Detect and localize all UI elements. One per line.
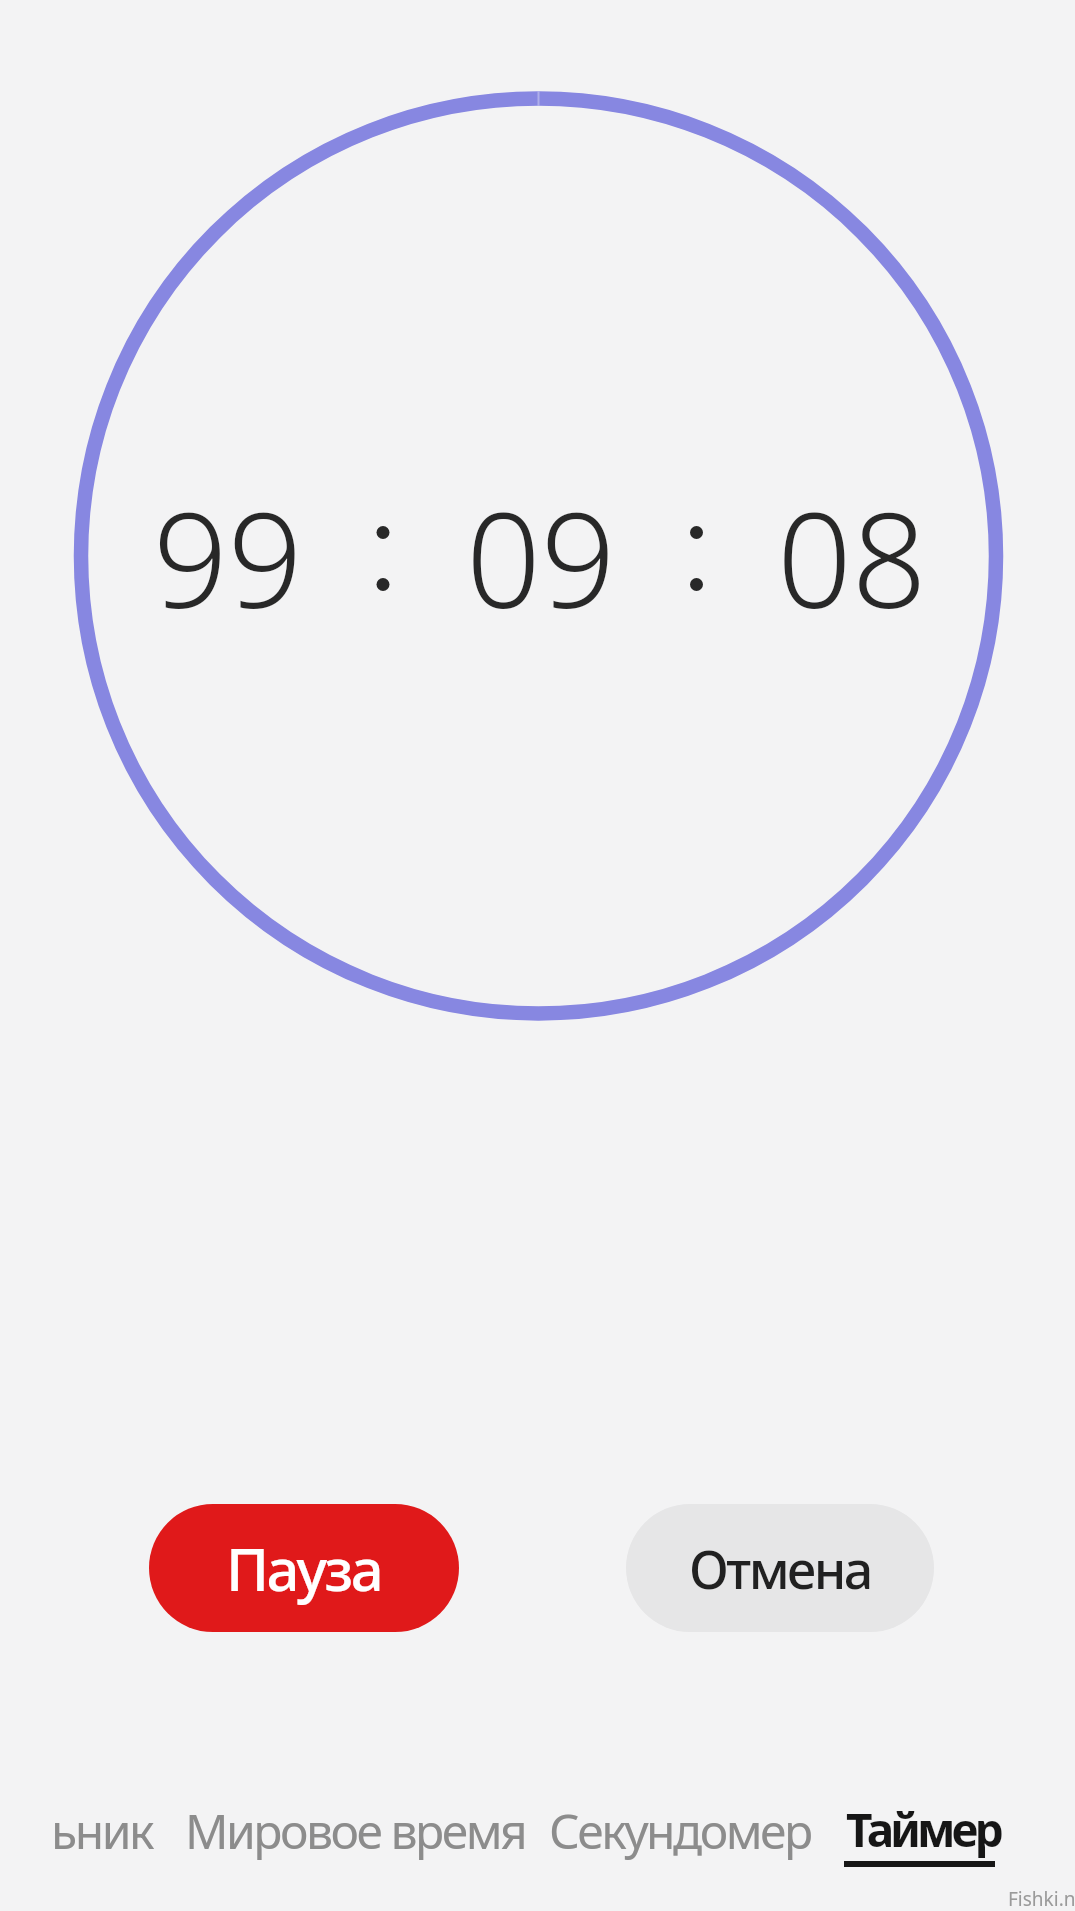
button[interactable]: Таймер — [846, 1798, 1000, 1861]
button[interactable]: Мировое время — [185, 1798, 526, 1863]
staticText: 08 — [777, 468, 927, 646]
staticText: 99 — [153, 468, 303, 646]
button[interactable]: Пауза — [149, 1504, 459, 1632]
staticText: Fishki.net — [1008, 1886, 1075, 1911]
staticText: Таймер — [846, 1798, 1000, 1861]
staticText: 09 — [466, 468, 616, 646]
staticText: Отмена — [689, 1533, 871, 1604]
staticText: ьник — [51, 1798, 152, 1863]
button[interactable]: Отмена — [626, 1504, 934, 1632]
staticText: Пауза — [226, 1529, 382, 1608]
button[interactable]: ьник — [51, 1798, 152, 1863]
staticText: Мировое время — [185, 1798, 526, 1863]
staticText: Секундомер — [549, 1798, 811, 1863]
button[interactable]: Секундомер — [549, 1798, 811, 1863]
